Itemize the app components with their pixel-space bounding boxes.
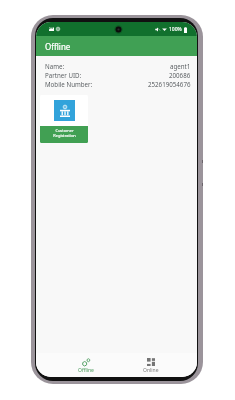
staticText: agent1 [170,62,191,70]
button[interactable]: Offline mode [53,353,118,374]
staticText: 252619054676 [148,80,191,88]
other: Online mode [147,358,155,366]
staticText: Mobile Number: [45,80,93,88]
staticText: Customer Registration [53,128,76,138]
button[interactable]: Customer Registration [40,95,88,143]
staticText: 100% [169,26,182,33]
staticText: Name: [45,62,65,70]
staticText: 200686 [169,71,191,79]
button[interactable]: Online mode [118,353,184,374]
staticText: Partner UID: [45,71,82,79]
staticText: Offline [78,367,94,374]
staticText: Online [143,367,159,374]
other: Offline mode [82,358,90,366]
staticText: Offline [45,41,71,52]
